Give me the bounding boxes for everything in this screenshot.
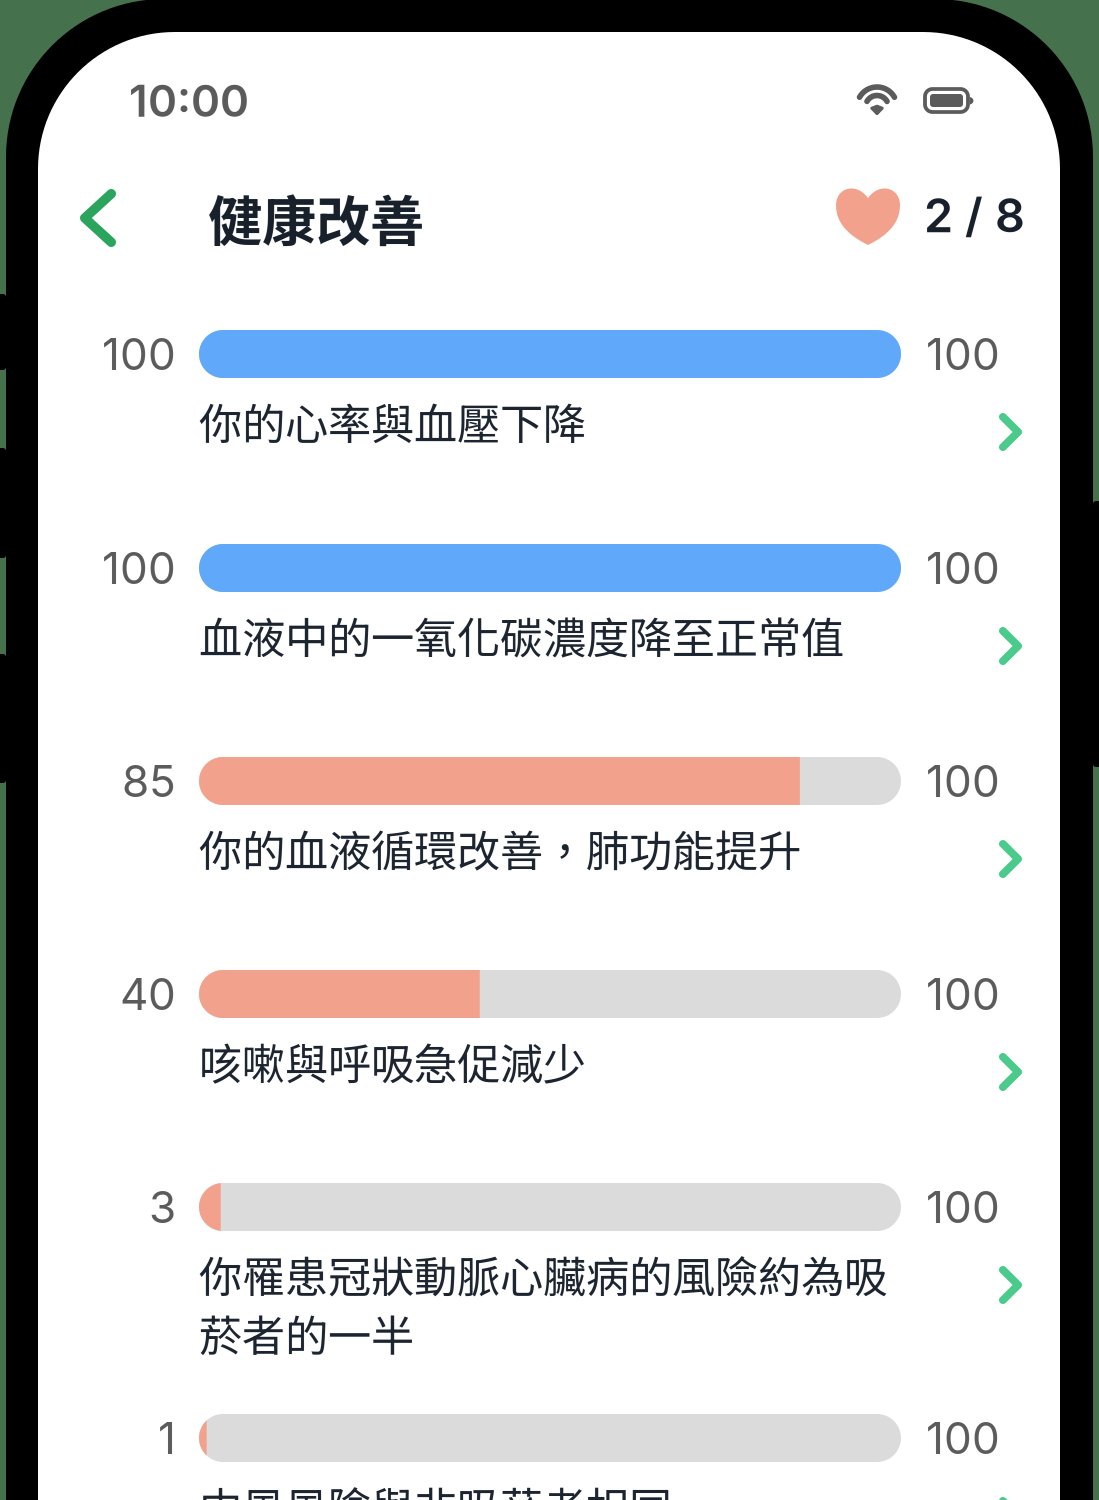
- staticText: 1: [158, 1411, 176, 1465]
- staticText: 100: [102, 541, 176, 595]
- staticText: 你的心率與血壓下降: [199, 390, 586, 453]
- button[interactable]: 100: [38, 330, 1060, 393]
- staticText: 100: [926, 327, 1000, 381]
- button[interactable]: 3: [38, 1183, 1060, 1304]
- staticText: 100: [926, 1411, 1000, 1465]
- staticText: 10:00: [129, 74, 249, 127]
- staticText: 100: [102, 327, 176, 381]
- staticText: 40: [120, 967, 176, 1021]
- staticText: 你罹患冠狀動脈心臟病的風險約為吸菸者的一半: [199, 1243, 887, 1364]
- staticText: 100: [926, 1180, 1000, 1234]
- staticText: 100: [926, 967, 1000, 1021]
- staticText: 3: [149, 1180, 176, 1234]
- button[interactable]: 85: [38, 757, 1060, 820]
- staticText: 咳嗽與呼吸急促減少: [199, 1030, 586, 1093]
- button[interactable]: Back: [56, 170, 140, 266]
- staticText: 健康改善: [208, 178, 424, 257]
- button[interactable]: 1: [38, 1414, 1060, 1477]
- button[interactable]: 100: [38, 544, 1060, 607]
- staticText: 85: [122, 754, 176, 808]
- staticText: 2 / 8: [924, 187, 1025, 243]
- staticText: 100: [926, 541, 1000, 595]
- button[interactable]: 40: [38, 970, 1060, 1033]
- staticText: 血液中的一氧化碳濃度降至正常值: [199, 604, 844, 667]
- staticText: 100: [926, 754, 1000, 808]
- staticText: 你的血液循環改善，肺功能提升: [199, 817, 801, 880]
- staticText: 中風風險與非吸菸者相同: [199, 1474, 672, 1500]
